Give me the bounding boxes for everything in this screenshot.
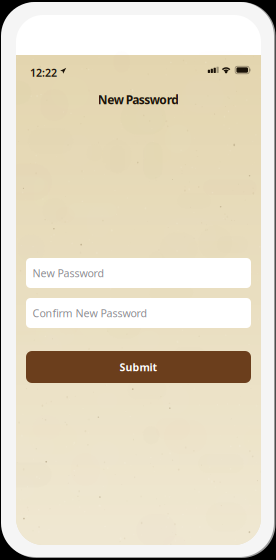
staticText: New Password [98, 91, 179, 107]
button[interactable]: Confirm New Password [26, 298, 251, 328]
button[interactable]: Submit [26, 351, 251, 383]
staticText: 12:22 [30, 65, 57, 80]
staticText: Submit [119, 360, 157, 374]
staticText: Confirm New Password [32, 306, 147, 320]
button[interactable]: New Password [26, 258, 251, 288]
staticText: New Password [32, 266, 104, 280]
